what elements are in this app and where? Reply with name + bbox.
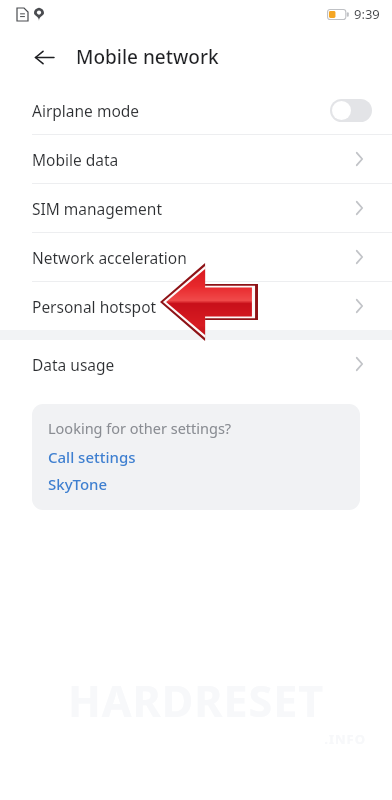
button[interactable]: Personal hotspot — [0, 282, 392, 330]
button[interactable]: SkyTone — [48, 474, 108, 494]
button[interactable]: Data usage — [0, 340, 392, 388]
staticText: Call settings — [48, 447, 136, 467]
staticText: Mobile network — [76, 44, 219, 70]
button[interactable]: Airplane mode — [0, 86, 392, 134]
staticText: Looking for other settings? — [48, 418, 232, 438]
button[interactable]: Mobile data — [0, 135, 392, 183]
staticText: Personal hotspot — [32, 296, 355, 317]
staticText: SkyTone — [48, 474, 108, 494]
staticText: Mobile data — [32, 149, 355, 170]
staticText: SIM management — [32, 198, 355, 219]
button[interactable]: Call settings — [48, 447, 136, 467]
button[interactable]: Network acceleration — [0, 233, 392, 281]
staticText: Data usage — [32, 354, 355, 375]
staticText: Network acceleration — [32, 247, 355, 268]
button[interactable]: SIM management — [0, 184, 392, 232]
button[interactable]: Back — [24, 37, 64, 77]
staticText: Airplane mode — [32, 100, 330, 121]
button[interactable]: Airplane mode toggle — [330, 99, 372, 122]
staticText: 9:39 — [354, 5, 380, 23]
